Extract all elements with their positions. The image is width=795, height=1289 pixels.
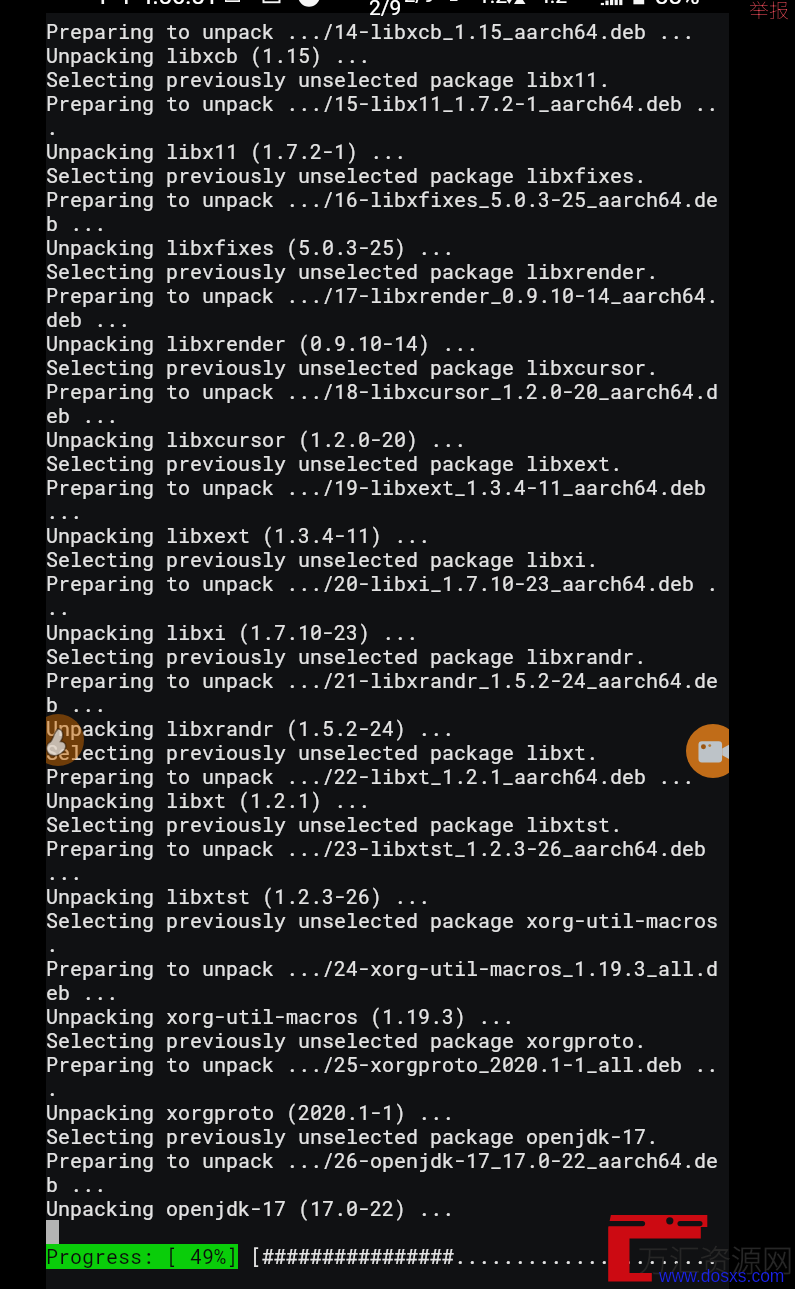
staticText: . [46, 931, 59, 957]
staticText: eb ... [46, 402, 119, 428]
staticText: Preparing to unpack .../25-xorgproto_202… [46, 1051, 719, 1077]
staticText: ... [46, 859, 83, 885]
staticText: Preparing to unpack .../20-libxi_1.7.10-… [46, 570, 719, 596]
staticText: b ... [46, 210, 107, 236]
staticText: Preparing to unpack .../14-libxcb_1.15_a… [46, 18, 695, 44]
staticText: Selecting previously unselected package … [46, 811, 623, 837]
staticText: b ... [46, 691, 107, 717]
staticText: Unpacking libxt (1.2.1) ... [46, 787, 371, 813]
staticText: Preparing to unpack .../18-libxcursor_1.… [46, 378, 719, 404]
staticText: 88% [655, 0, 700, 10]
staticText: Selecting previously unselected package … [46, 66, 611, 92]
staticText: Preparing to unpack .../16-libxfixes_5.0… [46, 186, 719, 212]
staticText: Unpacking libx11 (1.7.2-1) ... [46, 138, 407, 164]
staticText: Preparing to unpack .../19-libxext_1.3.4… [46, 474, 707, 500]
staticText: ... [46, 498, 83, 524]
staticText: 万汇资源网 [638, 1236, 793, 1281]
staticText: Selecting previously unselected package … [46, 739, 599, 765]
staticText: Selecting previously unselected package … [46, 1027, 647, 1053]
staticText: Preparing to unpack .../23-libxtst_1.2.3… [46, 835, 707, 861]
staticText: . [46, 1075, 59, 1101]
staticText: Selecting previously unselected package … [46, 450, 623, 476]
staticText: Selecting previously unselected package … [46, 643, 647, 669]
staticText: Preparing to unpack .../22-libxt_1.2.1_a… [46, 763, 695, 789]
staticText: .. [46, 594, 71, 620]
button[interactable]: 举报 [749, 0, 789, 24]
staticText: Unpacking libxrandr (1.5.2-24) ... [46, 715, 455, 741]
staticText: Unpacking xorgproto (2020.1-1) ... [46, 1099, 455, 1125]
staticText: Preparing to unpack .../15-libx11_1.7.2-… [46, 90, 719, 116]
button[interactable]: Floating assistant [46, 714, 84, 766]
staticText: Selecting previously unselected package … [46, 907, 719, 933]
staticText: deb ... [46, 306, 131, 332]
staticText: [################...................... [250, 1243, 719, 1269]
staticText: Preparing to unpack .../21-libxrandr_1.5… [46, 667, 719, 693]
staticText: Preparing to unpack .../17-libxrender_0.… [46, 282, 719, 308]
staticText: Progress: [ 49%] [46, 1243, 239, 1269]
staticText: 4.2 [538, 0, 568, 9]
staticText: 2/9 [369, 0, 402, 21]
staticText: Preparing to unpack .../24-xorg-util-mac… [46, 955, 719, 981]
button[interactable]: Screen record [686, 724, 729, 778]
staticText: 4:56:51 [139, 0, 219, 10]
staticText: Unpacking libxext (1.3.4-11) ... [46, 522, 431, 548]
staticText: Unpacking libxtst (1.2.3-26) ... [46, 883, 431, 909]
staticText: 1.2 [478, 0, 508, 9]
staticText: eb ... [46, 979, 119, 1005]
staticText: 2/9 [404, 0, 435, 6]
staticText: . [46, 114, 59, 140]
staticText: b ... [46, 1171, 107, 1197]
staticText: Preparing to unpack .../26-openjdk-17_17… [46, 1147, 719, 1173]
staticText: Unpacking openjdk-17 (17.0-22) ... [46, 1195, 455, 1221]
staticText: Unpacking libxcursor (1.2.0-20) ... [46, 426, 467, 452]
staticText: Selecting previously unselected package … [46, 162, 647, 188]
staticText: Unpacking libxrender (0.9.10-14) ... [46, 330, 479, 356]
staticText: Unpacking libxi (1.7.10-23) ... [46, 619, 419, 645]
staticText: Unpacking libxcb (1.15) ... [46, 42, 371, 68]
staticText: Selecting previously unselected package … [46, 546, 599, 572]
staticText: Selecting previously unselected package … [46, 258, 659, 284]
staticText: Selecting previously unselected package … [46, 1123, 659, 1149]
staticText: www.dosxs.com [659, 1266, 785, 1286]
staticText: Unpacking libxfixes (5.0.3-25) ... [46, 234, 455, 260]
staticText: Selecting previously unselected package … [46, 354, 659, 380]
staticText: Unpacking xorg-util-macros (1.19.3) ... [46, 1003, 515, 1029]
